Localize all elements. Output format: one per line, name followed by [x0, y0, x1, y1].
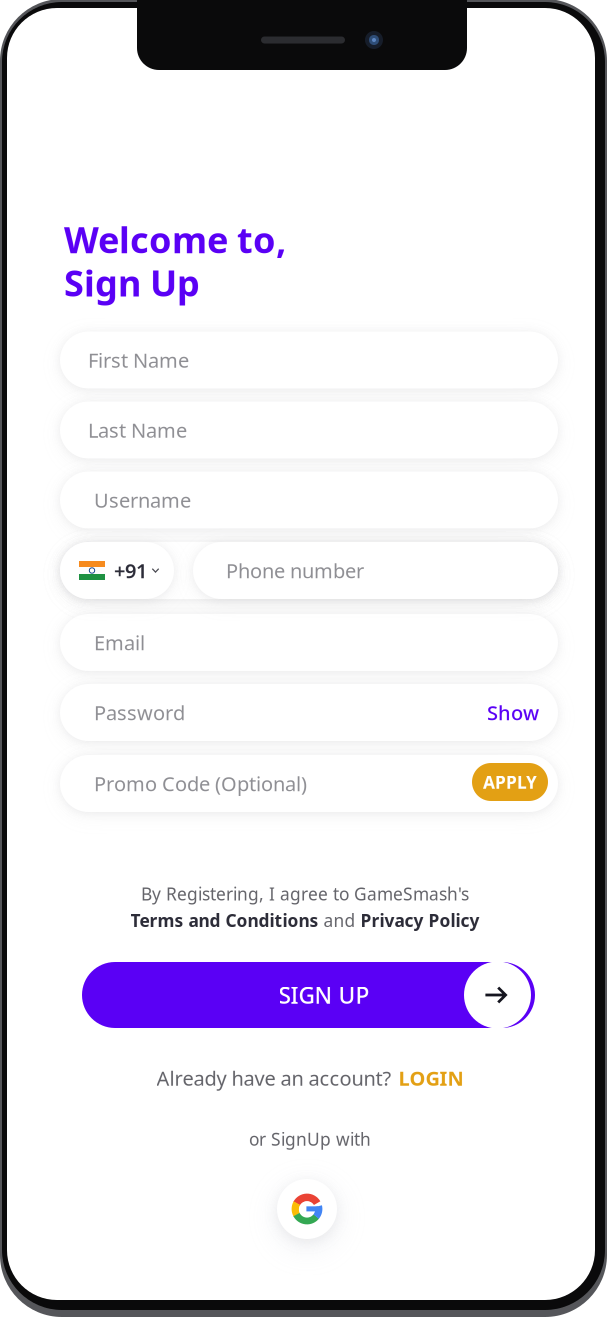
staticText: or SignUp with: [249, 1127, 371, 1150]
button[interactable]: Terms and Conditions: [130, 909, 318, 932]
button[interactable]: Sign up with Google: [277, 1179, 337, 1239]
staticText: Privacy Policy: [360, 909, 479, 932]
staticText: Show: [487, 699, 539, 726]
staticText: Last Name: [88, 417, 187, 443]
staticText: Sign Up: [64, 259, 200, 307]
staticText: SIGN UP: [278, 980, 369, 1010]
staticText: Phone number: [226, 557, 364, 584]
button[interactable]: Phone number: [193, 542, 558, 599]
button[interactable]: LOGIN: [398, 1065, 463, 1091]
button[interactable]: Show: [478, 692, 548, 732]
staticText: Welcome to,: [64, 215, 286, 263]
staticText: Already have an account?: [156, 1065, 391, 1091]
staticText: Password: [94, 699, 185, 726]
staticText: Email: [94, 629, 145, 656]
button[interactable]: SIGN UP: [82, 961, 535, 1028]
staticText: By Registering, I agree to GameSmash's: [141, 882, 469, 905]
staticText: APPLY: [483, 770, 537, 793]
staticText: Terms and Conditions: [130, 909, 318, 932]
staticText: +91: [114, 557, 147, 584]
button[interactable]: APPLY: [472, 763, 548, 801]
button[interactable]: Input field: [60, 614, 558, 671]
staticText: and: [323, 909, 355, 932]
button[interactable]: Input field: [60, 401, 558, 458]
staticText: Username: [94, 487, 191, 513]
button[interactable]: Input field: [60, 542, 558, 599]
button[interactable]: Privacy Policy: [360, 909, 479, 932]
button[interactable]: Input field: [60, 755, 558, 812]
button[interactable]: Input field: [60, 471, 558, 528]
staticText: LOGIN: [398, 1065, 463, 1091]
button[interactable]: Country code +91: [60, 542, 174, 599]
button[interactable]: Input field: [60, 684, 558, 741]
button[interactable]: Input field: [60, 331, 558, 388]
staticText: Promo Code (Optional): [94, 770, 307, 797]
staticText: First Name: [88, 347, 189, 373]
